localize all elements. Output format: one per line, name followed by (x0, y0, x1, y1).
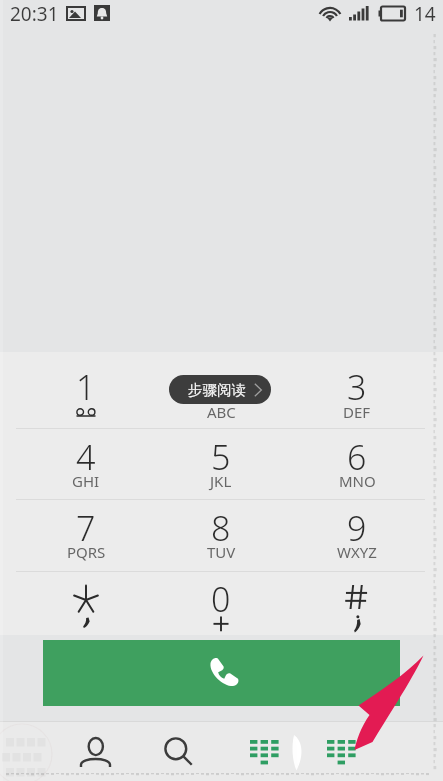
staticText: 4 (76, 434, 96, 474)
button[interactable] (161, 500, 281, 571)
button[interactable] (26, 429, 146, 500)
button[interactable] (297, 429, 417, 500)
staticText: MNO (339, 471, 376, 491)
staticText: 14 (414, 1, 436, 27)
staticText: 7 (76, 505, 96, 545)
staticText: 3 (347, 364, 367, 404)
button[interactable] (26, 500, 146, 571)
staticText: ABC (207, 402, 236, 422)
staticText: DEF (343, 402, 371, 422)
staticText: JKL (210, 471, 232, 491)
button[interactable] (297, 357, 417, 428)
staticText: 1 (76, 364, 96, 404)
staticText: PQRS (67, 542, 106, 562)
button[interactable] (161, 571, 281, 642)
button[interactable] (161, 357, 281, 428)
button[interactable] (161, 429, 281, 500)
button[interactable] (297, 571, 417, 642)
button[interactable] (26, 571, 146, 642)
button[interactable]: Search (148, 722, 208, 781)
staticText: 20:31 (10, 1, 59, 27)
staticText: 8 (211, 505, 231, 545)
staticText: TUV (207, 542, 236, 562)
button[interactable]: 步骤阅读 (169, 375, 271, 404)
staticText: 6 (347, 434, 367, 474)
staticText: 2 (211, 364, 231, 404)
staticText: GHI (72, 471, 100, 491)
button[interactable]: Call (43, 640, 400, 706)
staticText: 0 (211, 576, 231, 616)
button[interactable]: Contacts (65, 722, 125, 781)
staticText: 5 (211, 434, 231, 474)
button[interactable]: Dial pad (234, 722, 294, 781)
button[interactable] (297, 500, 417, 571)
staticText: 9 (347, 505, 367, 545)
staticText: 步骤阅读 (188, 381, 246, 399)
button[interactable] (26, 357, 146, 428)
staticText: WXYZ (337, 542, 377, 562)
button[interactable]: Keypad (311, 722, 371, 781)
